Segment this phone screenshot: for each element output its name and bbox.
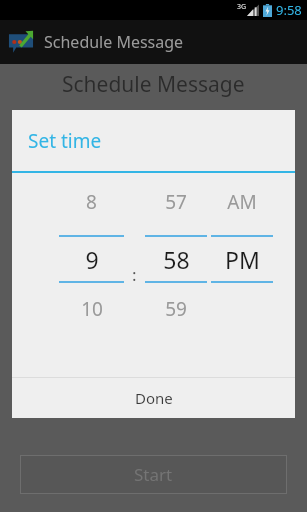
staticText: 58	[163, 244, 190, 275]
button[interactable]: 58	[145, 237, 207, 281]
staticText: 57	[165, 189, 187, 215]
staticText: 9:58	[276, 1, 302, 19]
button[interactable]: AM	[211, 173, 273, 230]
staticText: AM	[227, 189, 257, 215]
button[interactable]: 10	[59, 283, 124, 335]
staticText: 10	[81, 296, 103, 322]
staticText: 8	[86, 189, 97, 215]
staticText: 59	[165, 296, 187, 322]
staticText: Schedule Message	[62, 70, 245, 99]
other: Battery charging	[263, 4, 272, 17]
staticText: Schedule Message	[44, 31, 184, 53]
staticText: :	[132, 263, 137, 286]
button[interactable]: 9	[59, 237, 124, 281]
staticText: Set time	[28, 128, 102, 154]
button[interactable]: Start	[20, 455, 287, 494]
staticText: 3G	[237, 2, 247, 12]
button[interactable]: PM	[211, 237, 273, 281]
staticText: Start	[134, 463, 173, 486]
staticText: 9	[85, 244, 99, 275]
button[interactable]: 8	[59, 173, 124, 230]
button[interactable]: 57	[145, 173, 207, 230]
other: Signal strength	[247, 4, 259, 16]
staticText: Done	[135, 388, 173, 408]
other: Schedule Message app icon	[7, 28, 35, 56]
staticText: PM	[225, 244, 260, 275]
button[interactable]: Done	[12, 378, 295, 418]
button[interactable]: 59	[145, 283, 207, 335]
